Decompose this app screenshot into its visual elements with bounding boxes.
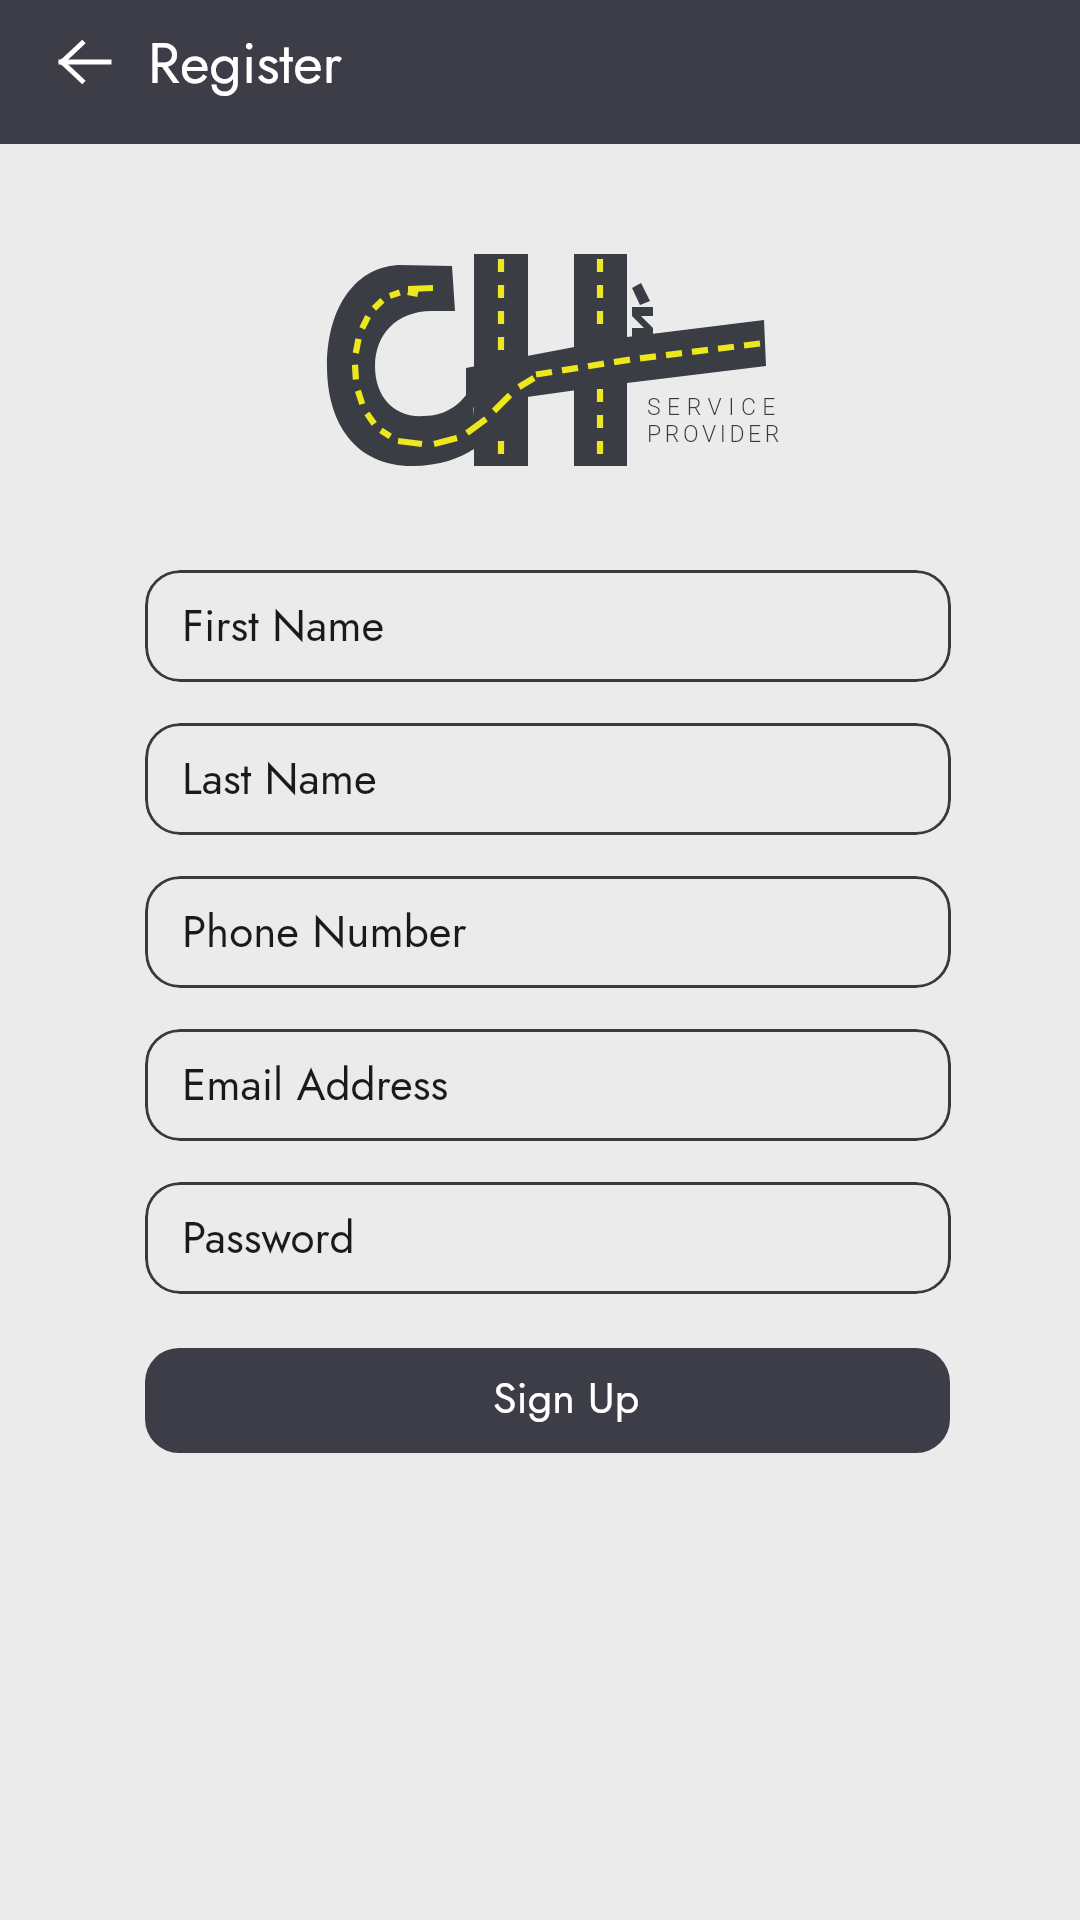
button[interactable]: Password (145, 1182, 951, 1294)
staticText: First Name (182, 594, 385, 658)
staticText: Email Address (182, 1053, 449, 1117)
staticText: Phone Number (182, 900, 467, 964)
staticText: Sign Up (493, 1367, 640, 1429)
button[interactable]: Back (49, 26, 121, 98)
button[interactable]: Email Address (145, 1029, 951, 1141)
button[interactable]: Last Name (145, 723, 951, 835)
button[interactable]: First Name (145, 570, 951, 682)
button[interactable]: Sign Up (145, 1348, 950, 1453)
staticText: SERVICE (647, 394, 782, 421)
staticText: Register (148, 22, 343, 104)
staticText: Password (182, 1206, 355, 1270)
staticText: Last Name (182, 747, 377, 811)
staticText: PROVIDER (647, 421, 783, 448)
button[interactable]: Phone Number (145, 876, 951, 988)
